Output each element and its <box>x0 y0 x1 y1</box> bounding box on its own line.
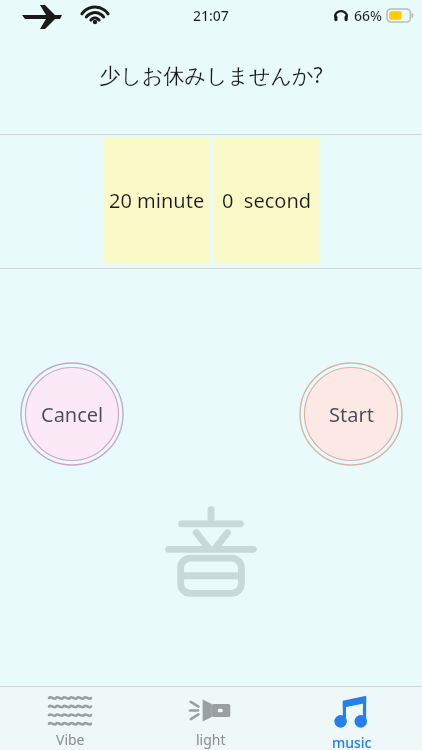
button[interactable]: light <box>140 687 281 750</box>
button[interactable]: Start <box>299 362 403 466</box>
staticText: 21:07 <box>193 6 229 25</box>
staticText: light <box>196 730 226 749</box>
button[interactable]: 20 minute <box>103 137 210 263</box>
button[interactable]: Vibe <box>0 687 140 750</box>
staticText: Vibe <box>56 730 85 749</box>
staticText: Cancel <box>41 401 104 428</box>
staticText: music <box>332 733 372 750</box>
staticText: 20 minute <box>109 187 205 214</box>
button[interactable]: music <box>281 687 422 750</box>
staticText: 66% <box>354 6 382 25</box>
button[interactable]: Cancel <box>20 362 124 466</box>
button[interactable]: 0 second <box>214 137 320 263</box>
staticText: 0 second <box>222 187 312 214</box>
staticText: Start <box>329 401 374 428</box>
staticText: 少しお休みしませんか? <box>99 61 323 90</box>
